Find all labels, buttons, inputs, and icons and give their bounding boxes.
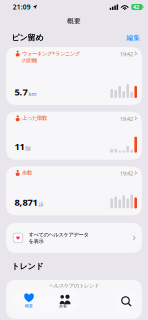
staticText: トレンド bbox=[11, 261, 43, 271]
button[interactable]: すべてのヘルスケアデータ を表示 bbox=[6, 223, 142, 253]
staticText: 概要 bbox=[67, 17, 81, 25]
button[interactable]: 検索 bbox=[114, 289, 137, 312]
staticText: ヘルスケアのトレンド bbox=[49, 282, 99, 289]
staticText: km bbox=[28, 90, 36, 97]
button[interactable]: 歩数 bbox=[6, 166, 142, 215]
staticText: 11 bbox=[14, 140, 24, 153]
staticText: 21:09 bbox=[13, 3, 31, 11]
staticText: 編集 bbox=[126, 34, 140, 42]
staticText: 階 bbox=[25, 145, 30, 152]
staticText: 概要 bbox=[25, 303, 33, 308]
staticText: 5.7 bbox=[14, 86, 27, 98]
staticText: ピン留め bbox=[11, 33, 43, 42]
button[interactable]: 概要 bbox=[12, 289, 46, 311]
button[interactable]: 共有 bbox=[46, 289, 80, 311]
button[interactable]: ヘルスケアのトレンド bbox=[6, 280, 142, 319]
staticText: 8,871 bbox=[14, 196, 37, 208]
staticText: すべてのヘルスケアデータ を表示 bbox=[28, 231, 88, 244]
staticText: 歩数 bbox=[22, 169, 32, 176]
button[interactable]: 上った階数 bbox=[6, 112, 142, 160]
staticText: 42 bbox=[133, 3, 139, 11]
staticText: 19:42 bbox=[120, 115, 133, 122]
staticText: 19:42 bbox=[120, 170, 133, 177]
staticText: 19:42 bbox=[120, 51, 133, 58]
staticText: 共有 bbox=[59, 304, 67, 308]
button[interactable]: ウォーキング+ランニングの距離 bbox=[6, 47, 142, 105]
staticText: 歩 bbox=[38, 201, 43, 208]
staticText: 上った階数 bbox=[22, 115, 47, 121]
button[interactable]: 編集 bbox=[126, 34, 140, 42]
staticText: ウォーキング+ランニングの距離 bbox=[22, 50, 80, 64]
